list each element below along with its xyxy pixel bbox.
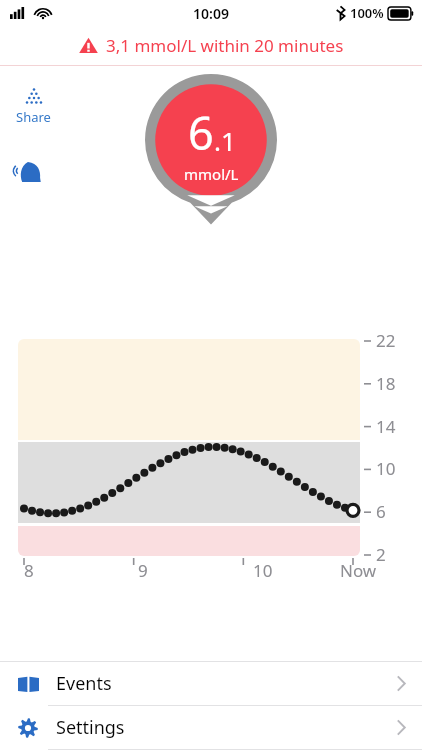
staticText: 8 xyxy=(24,559,34,582)
button[interactable]: Share xyxy=(12,84,55,128)
staticText: 6 xyxy=(188,102,214,163)
staticText: 18 xyxy=(376,372,396,395)
staticText: 2 xyxy=(376,543,386,566)
button[interactable]: Events xyxy=(0,662,422,705)
button[interactable]: Current glucose 6.1 mmol per litre xyxy=(145,74,277,226)
staticText: 10 xyxy=(376,457,396,480)
staticText: 6 xyxy=(376,500,386,523)
staticText: .1 xyxy=(214,123,236,158)
staticText: 22 xyxy=(376,329,396,352)
staticText: Settings xyxy=(56,715,125,740)
button[interactable]: Settings xyxy=(0,706,422,749)
button[interactable]: Alerts xyxy=(10,152,50,192)
staticText: Share xyxy=(16,108,51,126)
staticText: 14 xyxy=(376,415,396,438)
staticText: Now xyxy=(340,559,377,582)
staticText: Events xyxy=(56,671,112,696)
staticText: mmol/L xyxy=(184,164,239,184)
staticText: 100% xyxy=(350,4,384,22)
staticText: 10:09 xyxy=(193,4,229,23)
staticText: 9 xyxy=(138,559,148,582)
staticText: 10 xyxy=(253,559,273,582)
staticText: 3,1 mmol/L within 20 minutes xyxy=(106,34,344,57)
